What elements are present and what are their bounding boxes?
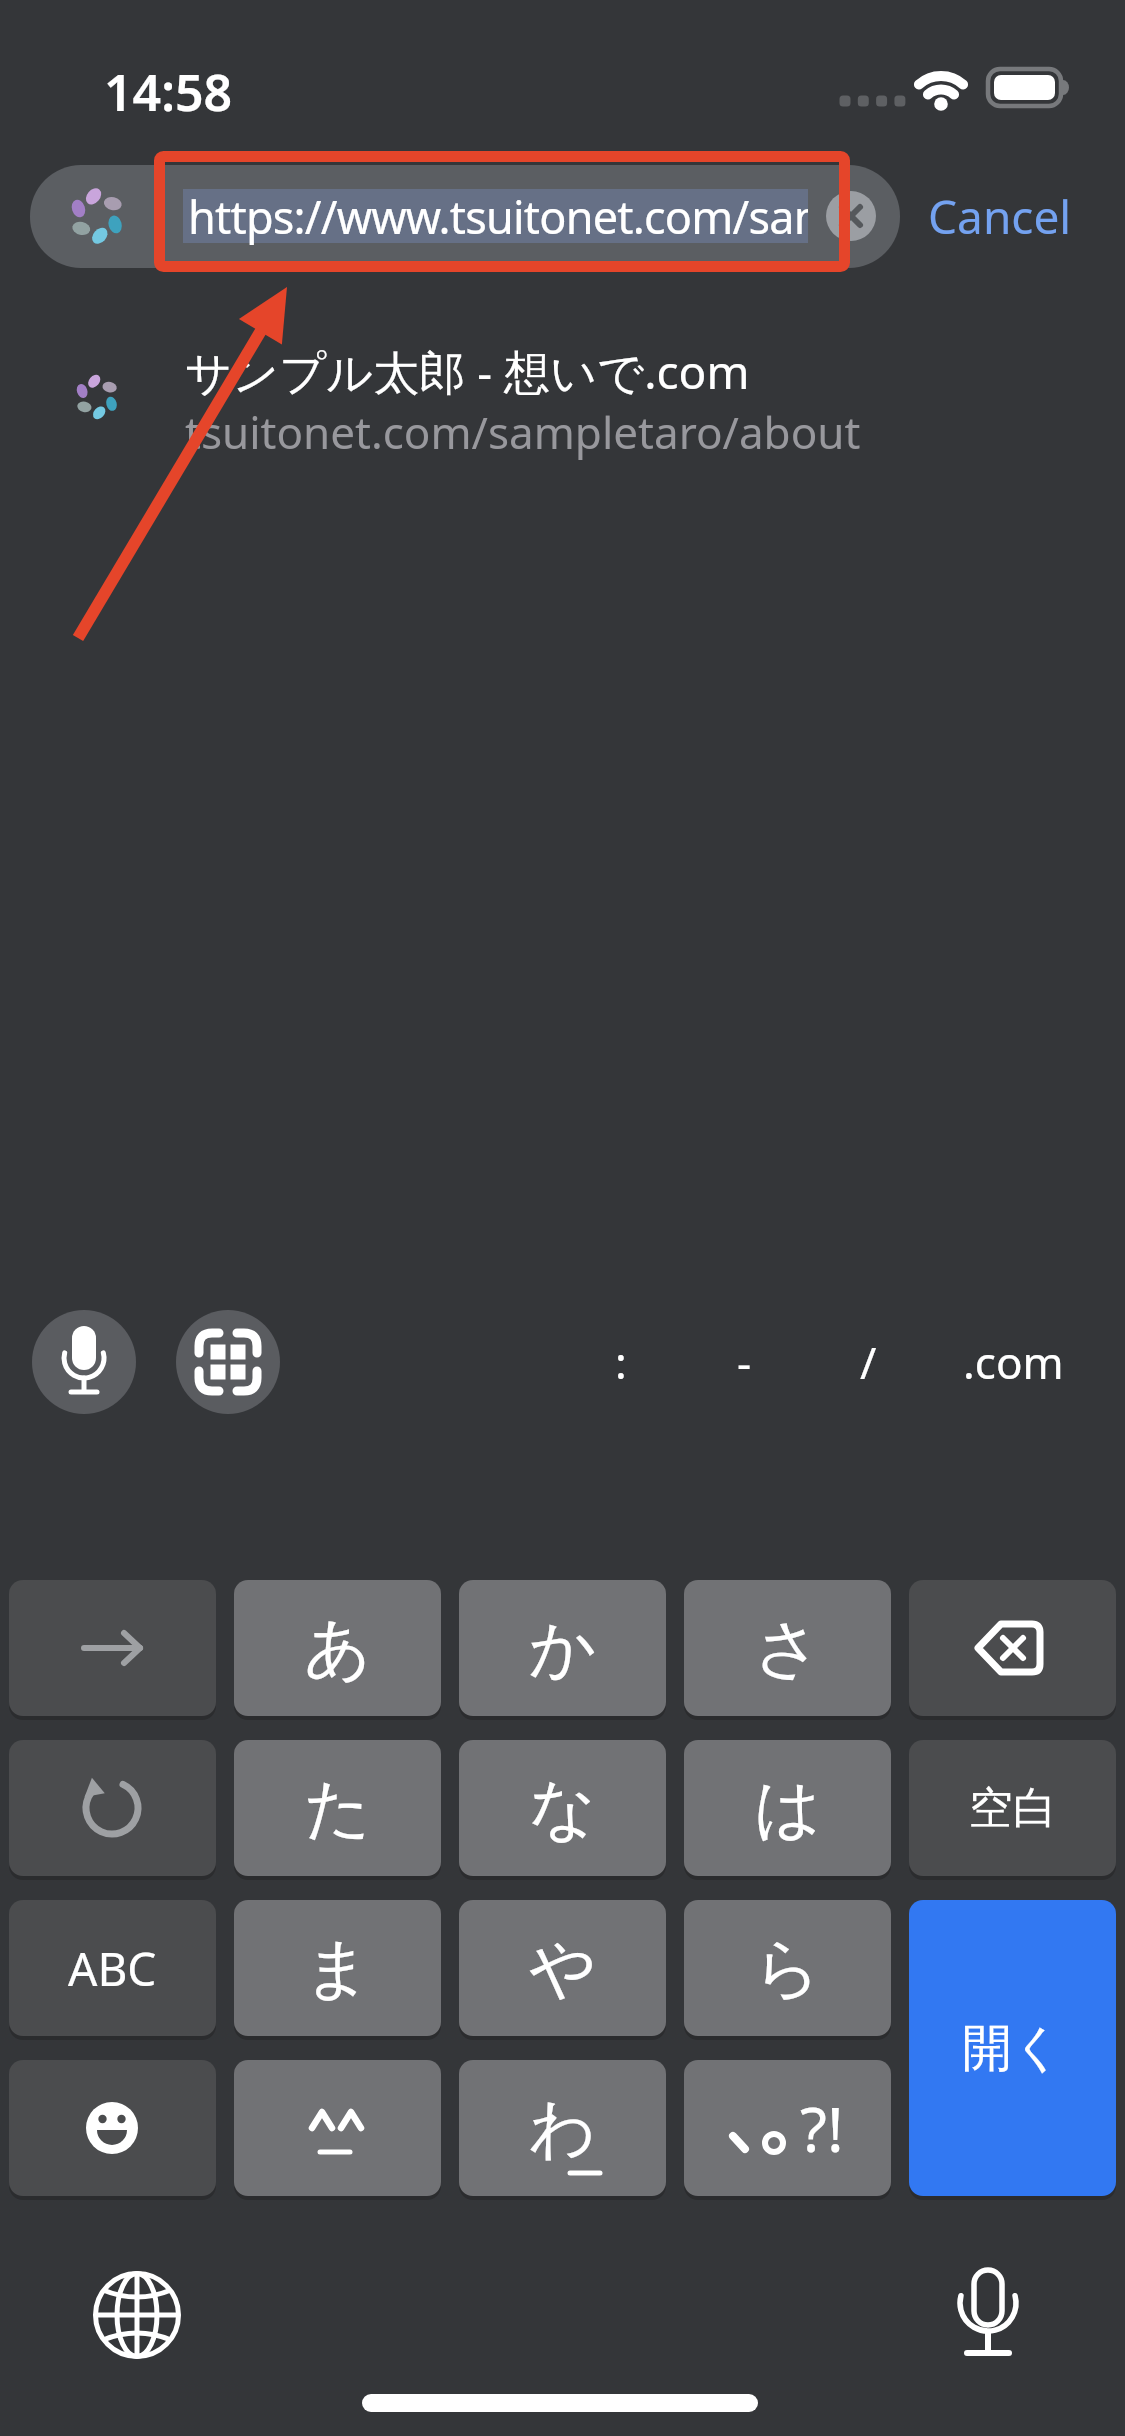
staticText: ABC (68, 1937, 157, 2000)
button[interactable] (585, 1330, 657, 1394)
button[interactable] (684, 1580, 891, 1716)
button[interactable] (234, 1580, 441, 1716)
staticText: 空白 (969, 1781, 1057, 1836)
button[interactable] (32, 1310, 136, 1414)
button[interactable] (684, 2060, 891, 2196)
button[interactable] (87, 2265, 187, 2365)
button[interactable] (9, 2060, 216, 2196)
button[interactable] (459, 1740, 666, 1876)
button[interactable] (826, 191, 876, 241)
button[interactable] (459, 2060, 666, 2196)
staticText: 開く (962, 2017, 1064, 2080)
button[interactable] (30, 165, 900, 268)
staticText: - (737, 1332, 752, 1392)
button[interactable] (176, 1310, 280, 1414)
button[interactable] (708, 1330, 780, 1394)
staticText: サンプル太郎 - 想いで.com (185, 340, 750, 402)
button[interactable] (40, 330, 1085, 470)
button[interactable] (684, 1740, 891, 1876)
button[interactable]: 開く (909, 1900, 1116, 2196)
button[interactable] (832, 1330, 904, 1394)
button[interactable]: Cancel (915, 165, 1085, 268)
staticText: Cancel (928, 185, 1072, 248)
button[interactable] (234, 1900, 441, 2036)
button[interactable] (938, 2258, 1038, 2363)
staticText: さ (754, 1607, 822, 1690)
button[interactable]: ABC (9, 1900, 216, 2036)
staticText: か (529, 1607, 597, 1690)
button[interactable] (9, 1740, 216, 1876)
button[interactable] (234, 2060, 441, 2196)
staticText: や (529, 1927, 597, 2010)
button[interactable] (459, 1580, 666, 1716)
staticText: https://www.tsuitonet.com/sam (188, 186, 808, 247)
staticText: tsuitonet.com/sampletaro/about (185, 402, 861, 460)
staticText: わ (529, 2087, 597, 2170)
button[interactable] (234, 1740, 441, 1876)
button[interactable] (9, 1580, 216, 1716)
staticText: あ (304, 1607, 372, 1690)
staticText: ら (754, 1927, 822, 2010)
staticText: .com (963, 1332, 1064, 1392)
staticText: 14:58 (104, 58, 233, 120)
staticText: : (615, 1332, 627, 1392)
button[interactable] (950, 1330, 1076, 1394)
button[interactable]: 空白 (909, 1740, 1116, 1876)
button[interactable] (684, 1900, 891, 2036)
staticText: た (304, 1767, 372, 1850)
staticText: ま (304, 1927, 372, 2010)
staticText: ?! (800, 2086, 844, 2170)
button[interactable] (459, 1900, 666, 2036)
staticText: / (860, 1332, 877, 1392)
button[interactable] (909, 1580, 1116, 1716)
staticText: は (754, 1767, 822, 1850)
staticText: な (529, 1767, 597, 1850)
